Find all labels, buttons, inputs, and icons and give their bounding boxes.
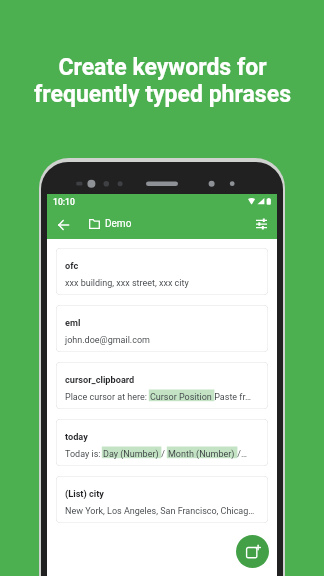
staticText: eml: [65, 317, 81, 328]
staticText: Paste fr…: [212, 392, 252, 403]
button[interactable]: eml: [56, 305, 268, 352]
button[interactable]: ofc: [56, 248, 268, 295]
staticText: john.doe@gmail.com: [65, 335, 150, 346]
staticText: xxx building, xxx street, xxx city: [65, 278, 189, 289]
button[interactable]: Filter: [248, 211, 274, 237]
button[interactable]: Add phrase: [236, 535, 269, 568]
staticText: Demo: [105, 218, 132, 230]
staticText: (List) city: [65, 488, 104, 499]
button[interactable]: cursor_clipboard: [56, 362, 268, 409]
staticText: /…: [235, 449, 247, 460]
staticText: Month (Number): [168, 449, 235, 460]
staticText: Place cursor at here:: [65, 392, 150, 403]
button[interactable]: today: [56, 419, 268, 466]
staticText: today: [65, 431, 88, 442]
staticText: /: [159, 449, 168, 460]
staticText: Cursor Position: [150, 392, 212, 403]
staticText: 10:10: [53, 197, 75, 207]
staticText: frequently typed phrases: [34, 81, 291, 108]
staticText: Day (Number): [103, 449, 159, 460]
staticText: Today is:: [65, 449, 103, 460]
staticText: Create keywords for: [58, 54, 267, 81]
button[interactable]: Demo: [89, 213, 132, 235]
staticText: ofc: [65, 260, 79, 271]
staticText: New York, Los Angeles, San Francisco, Ch…: [65, 506, 255, 517]
staticText: cursor_clipboard: [65, 374, 135, 385]
button[interactable]: (List) city: [56, 476, 268, 523]
button[interactable]: Back: [49, 212, 77, 238]
